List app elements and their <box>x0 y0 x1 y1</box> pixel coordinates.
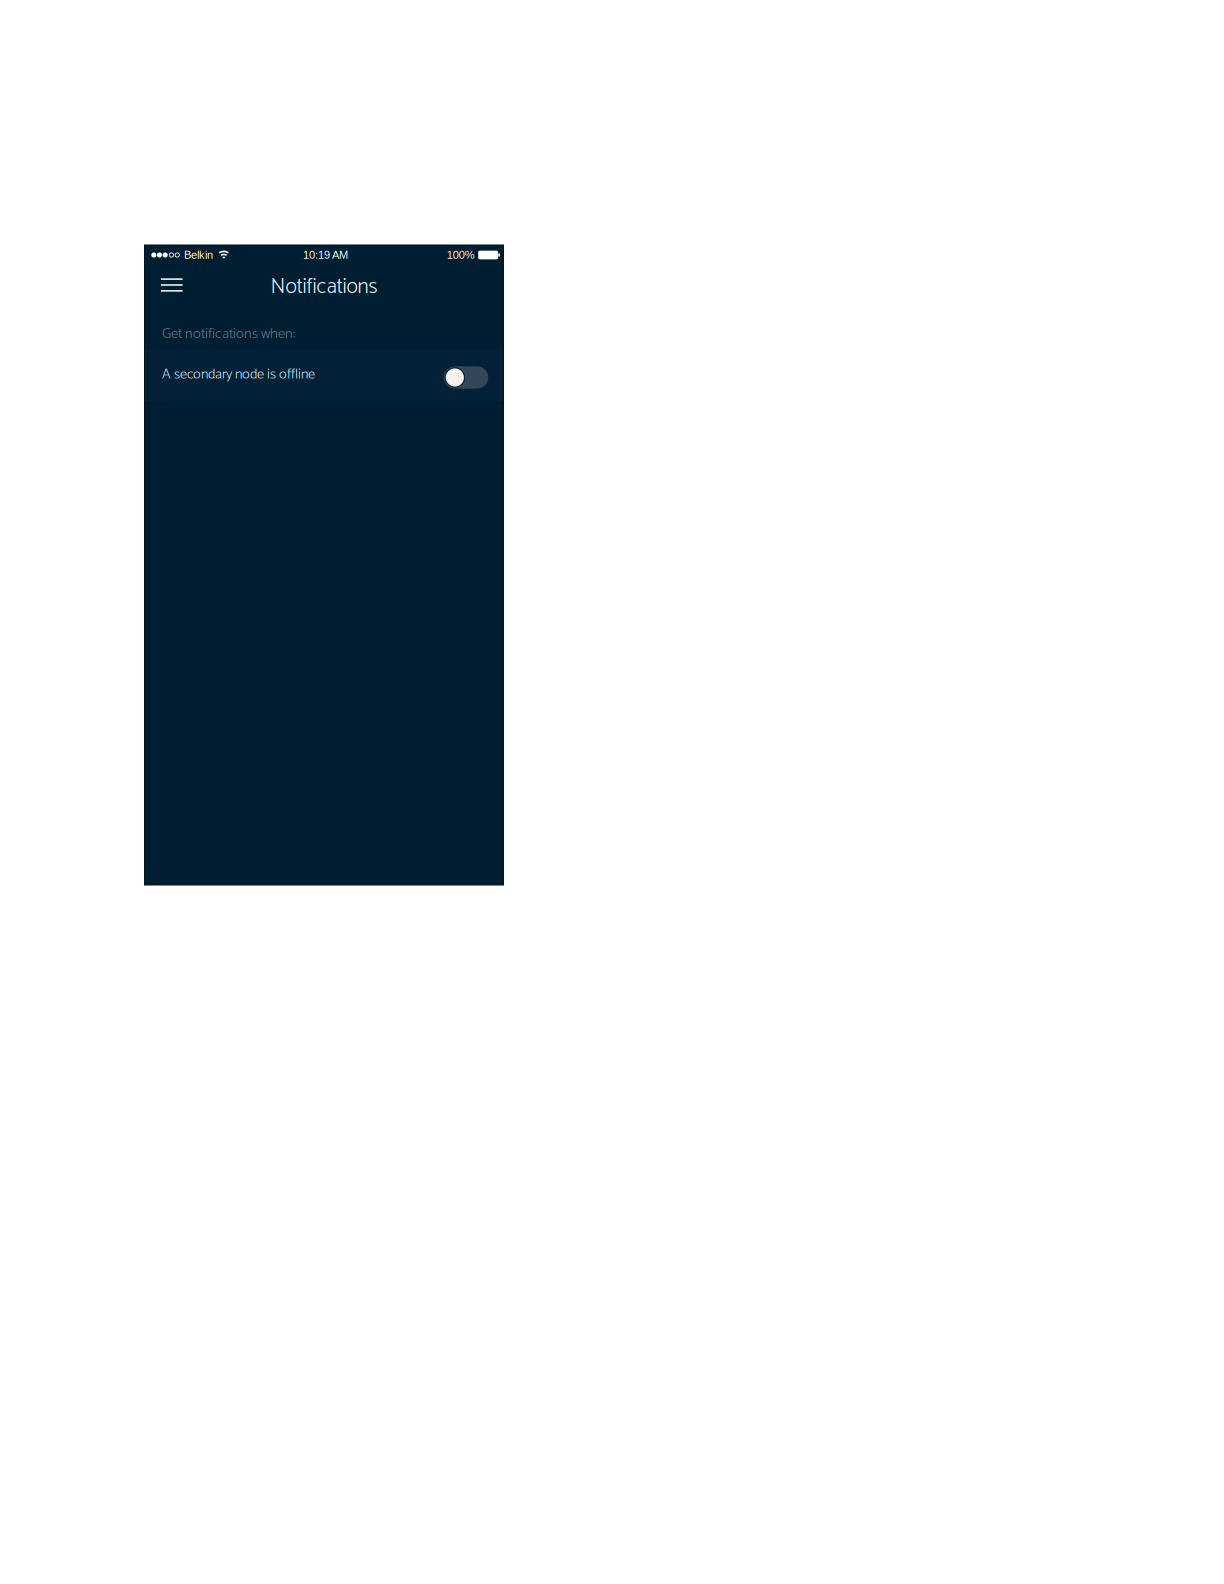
button[interactable]: A secondary node is offline <box>144 350 503 401</box>
staticText: 100% <box>447 249 475 261</box>
button[interactable]: Menu <box>144 267 196 303</box>
staticText: A secondary node is offline <box>162 363 315 386</box>
staticText: 10:19 AM <box>303 249 348 261</box>
staticText: Belkin <box>184 249 213 261</box>
staticText: Notifications <box>270 269 377 305</box>
staticText: Get notifications when: <box>162 322 295 346</box>
